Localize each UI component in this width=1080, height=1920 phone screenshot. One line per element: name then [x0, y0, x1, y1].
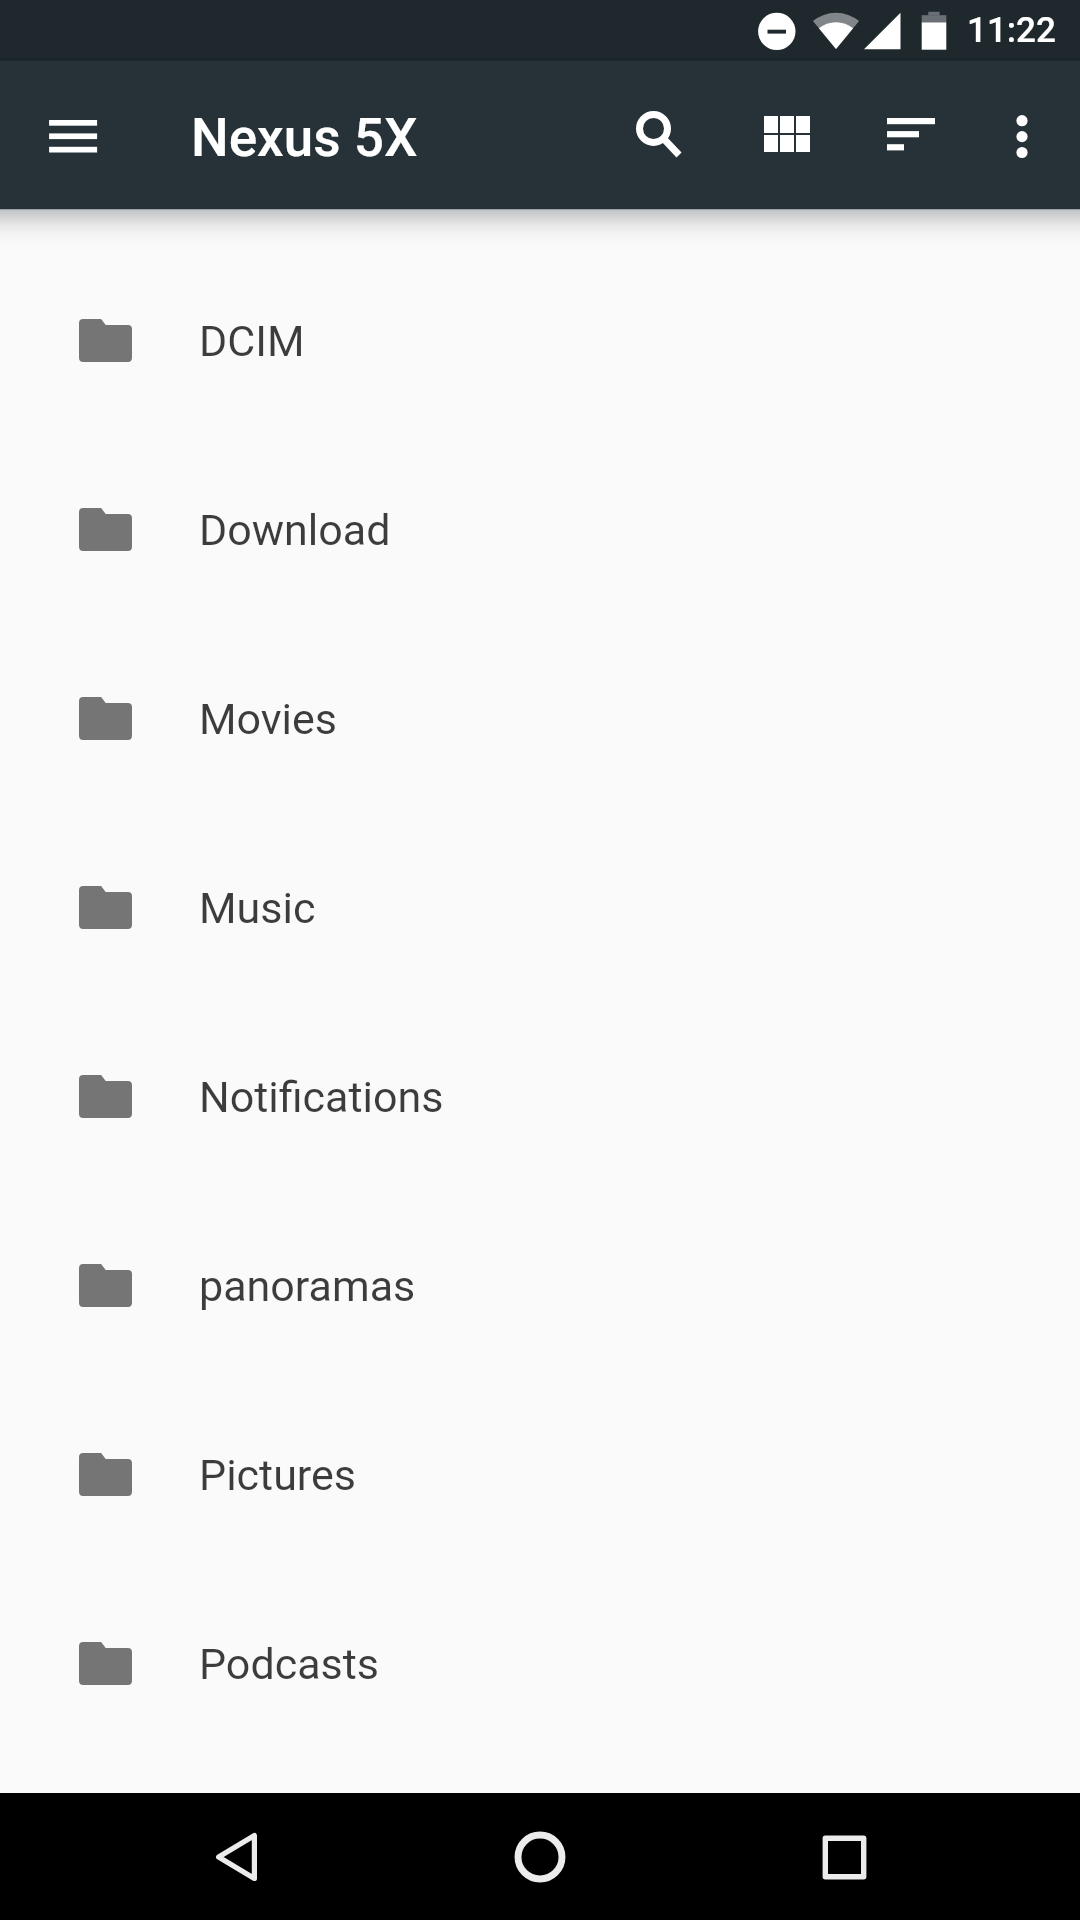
- staticText: Podcasts: [199, 1639, 379, 1689]
- button[interactable]: Grid view: [732, 79, 842, 189]
- button[interactable]: Pictures: [0, 1380, 1080, 1569]
- button[interactable]: Download: [0, 435, 1080, 624]
- staticText: panoramas: [199, 1261, 416, 1311]
- button[interactable]: Back: [181, 1802, 291, 1912]
- staticText: Nexus 5X: [191, 107, 418, 169]
- staticText: DCIM: [199, 316, 305, 366]
- button[interactable]: Sort: [856, 80, 966, 190]
- button[interactable]: Movies: [0, 624, 1080, 813]
- button[interactable]: panoramas: [0, 1191, 1080, 1380]
- button[interactable]: Open navigation drawer: [25, 88, 121, 184]
- staticText: Music: [199, 883, 316, 933]
- button[interactable]: Recent apps: [789, 1802, 899, 1912]
- staticText: Movies: [199, 694, 338, 744]
- button[interactable]: Search: [598, 67, 708, 177]
- button[interactable]: More options: [967, 81, 1077, 191]
- button[interactable]: Music: [0, 813, 1080, 1002]
- staticText: Download: [199, 505, 391, 555]
- button[interactable]: DCIM: [0, 246, 1080, 435]
- staticText: Pictures: [199, 1450, 357, 1500]
- button[interactable]: Podcasts: [0, 1569, 1080, 1758]
- button[interactable]: Home: [485, 1802, 595, 1912]
- staticText: 11:22: [967, 10, 1056, 51]
- button[interactable]: Notifications: [0, 1002, 1080, 1191]
- staticText: Notifications: [199, 1072, 444, 1122]
